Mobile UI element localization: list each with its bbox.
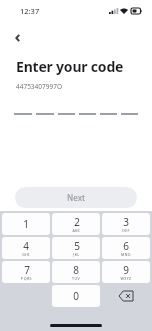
staticText: WXYZ	[120, 276, 132, 281]
staticText: 9	[123, 263, 129, 277]
staticText: 8	[73, 263, 79, 277]
staticText: MNO	[121, 252, 131, 257]
staticText: 0	[73, 289, 79, 303]
button[interactable]: 8	[52, 261, 100, 283]
button[interactable]: 2	[52, 213, 100, 235]
staticText: 12:37	[20, 6, 40, 16]
staticText: 5	[74, 239, 80, 253]
staticText: ABC	[72, 228, 81, 233]
button[interactable]: Back	[8, 28, 28, 48]
button[interactable]: 0	[52, 285, 100, 307]
button[interactable]: Next	[15, 187, 137, 208]
button[interactable]: 6	[102, 237, 150, 259]
button[interactable]: 7	[2, 261, 50, 283]
staticText: PQRS	[21, 276, 32, 281]
staticText: GHI	[22, 252, 30, 257]
staticText: Enter your code	[16, 57, 124, 76]
staticText: 2	[74, 215, 80, 229]
staticText: TUV	[72, 276, 80, 281]
staticText: 1	[23, 217, 29, 231]
staticText: 4	[23, 239, 29, 253]
button[interactable]: 1	[2, 213, 50, 235]
staticText: 7	[24, 263, 30, 277]
staticText: 3	[123, 215, 129, 229]
button[interactable]: 5	[52, 237, 100, 259]
button[interactable]: 3	[102, 213, 150, 235]
button[interactable]: 9	[102, 261, 150, 283]
staticText: 6	[123, 239, 129, 253]
staticText: 44753407997O	[16, 82, 62, 91]
staticText: Next	[67, 192, 86, 203]
button[interactable]: Backspace	[102, 285, 150, 307]
button[interactable]: 4	[2, 237, 50, 259]
staticText: JKL	[73, 252, 80, 257]
staticText: DEF	[122, 228, 130, 233]
